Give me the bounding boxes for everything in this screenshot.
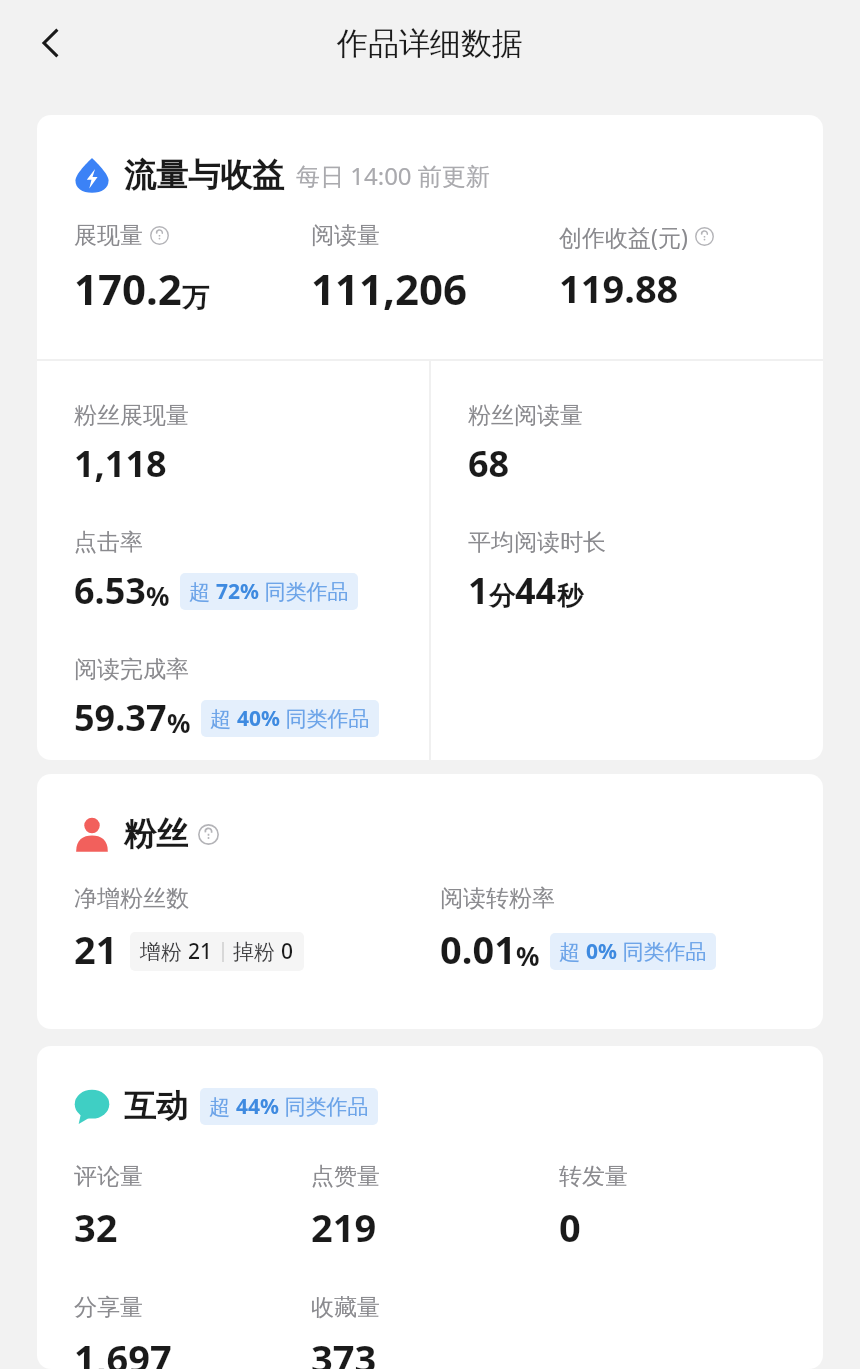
- staticText: 同类作品: [259, 577, 349, 606]
- staticText: 超: [210, 704, 237, 733]
- staticText: 超: [209, 1092, 236, 1121]
- staticText: 219: [311, 1201, 377, 1253]
- staticText: 0: [281, 937, 294, 966]
- staticText: 111,206: [311, 260, 468, 317]
- staticText: 万: [182, 281, 209, 315]
- staticText: %: [167, 705, 191, 740]
- staticText: 同类作品: [279, 1092, 369, 1121]
- staticText: 超: [559, 937, 586, 966]
- staticText: 32: [74, 1201, 118, 1253]
- staticText: 分: [489, 580, 515, 613]
- staticText: 21: [188, 937, 213, 966]
- staticText: 粉丝: [124, 814, 188, 854]
- staticText: 展现量: [74, 221, 143, 250]
- staticText: 评论量: [74, 1162, 143, 1191]
- staticText: 秒: [557, 580, 583, 613]
- other: 互动: [74, 1088, 110, 1124]
- staticText: 6.53: [74, 566, 146, 615]
- staticText: 119.88: [559, 262, 679, 314]
- staticText: 创作收益(元): [559, 221, 688, 252]
- staticText: 1: [468, 566, 489, 615]
- button[interactable]: 超: [550, 933, 716, 970]
- staticText: 阅读转粉率: [440, 884, 555, 913]
- staticText: %: [146, 578, 170, 613]
- staticText: %: [516, 938, 540, 973]
- staticText: 点赞量: [311, 1162, 380, 1191]
- staticText: 同类作品: [280, 704, 370, 733]
- staticText: 收藏量: [311, 1293, 380, 1322]
- staticText: 作品详细数据: [337, 24, 523, 63]
- other: 粉丝: [74, 816, 110, 852]
- button[interactable]: 超: [200, 1088, 378, 1125]
- staticText: 阅读完成率: [74, 655, 189, 684]
- staticText: 点击率: [74, 528, 143, 557]
- staticText: 流量与收益: [124, 155, 284, 195]
- staticText: 粉丝阅读量: [468, 401, 583, 430]
- staticText: 同类作品: [617, 937, 707, 966]
- button[interactable]: 增粉: [130, 932, 304, 971]
- staticText: 净增粉丝数: [74, 884, 189, 913]
- button[interactable]: 超: [180, 573, 358, 610]
- button[interactable]: 超: [201, 700, 379, 737]
- staticText: 21: [74, 923, 118, 975]
- button[interactable]: 粉丝: [37, 774, 823, 854]
- staticText: 0.01: [440, 923, 516, 975]
- staticText: 44%: [236, 1092, 279, 1121]
- staticText: 增粉: [140, 937, 188, 966]
- staticText: 掉粉: [233, 937, 281, 966]
- staticText: 59.37: [74, 693, 167, 742]
- staticText: 粉丝展现量: [74, 401, 189, 430]
- button[interactable]: 互动: [37, 1046, 823, 1126]
- staticText: 超: [189, 577, 216, 606]
- staticText: 分享量: [74, 1293, 143, 1322]
- staticText: 每日 14:00 前更新: [296, 159, 490, 192]
- staticText: 68: [468, 439, 510, 488]
- staticText: 平均阅读时长: [468, 528, 606, 557]
- staticText: 40%: [237, 704, 280, 733]
- staticText: 转发量: [559, 1162, 628, 1191]
- staticText: 373: [311, 1332, 377, 1369]
- other: 流量与收益: [74, 157, 110, 193]
- staticText: 44: [515, 566, 557, 615]
- staticText: 0: [559, 1201, 581, 1253]
- staticText: 170.2: [74, 260, 182, 317]
- staticText: 1,118: [74, 439, 167, 488]
- button[interactable]: 流量与收益: [37, 115, 823, 195]
- staticText: 0%: [586, 937, 617, 966]
- staticText: 互动: [124, 1086, 188, 1126]
- button[interactable]: 返回: [22, 14, 80, 72]
- staticText: 1,697: [74, 1332, 172, 1369]
- staticText: 阅读量: [311, 221, 380, 250]
- staticText: 72%: [216, 577, 259, 606]
